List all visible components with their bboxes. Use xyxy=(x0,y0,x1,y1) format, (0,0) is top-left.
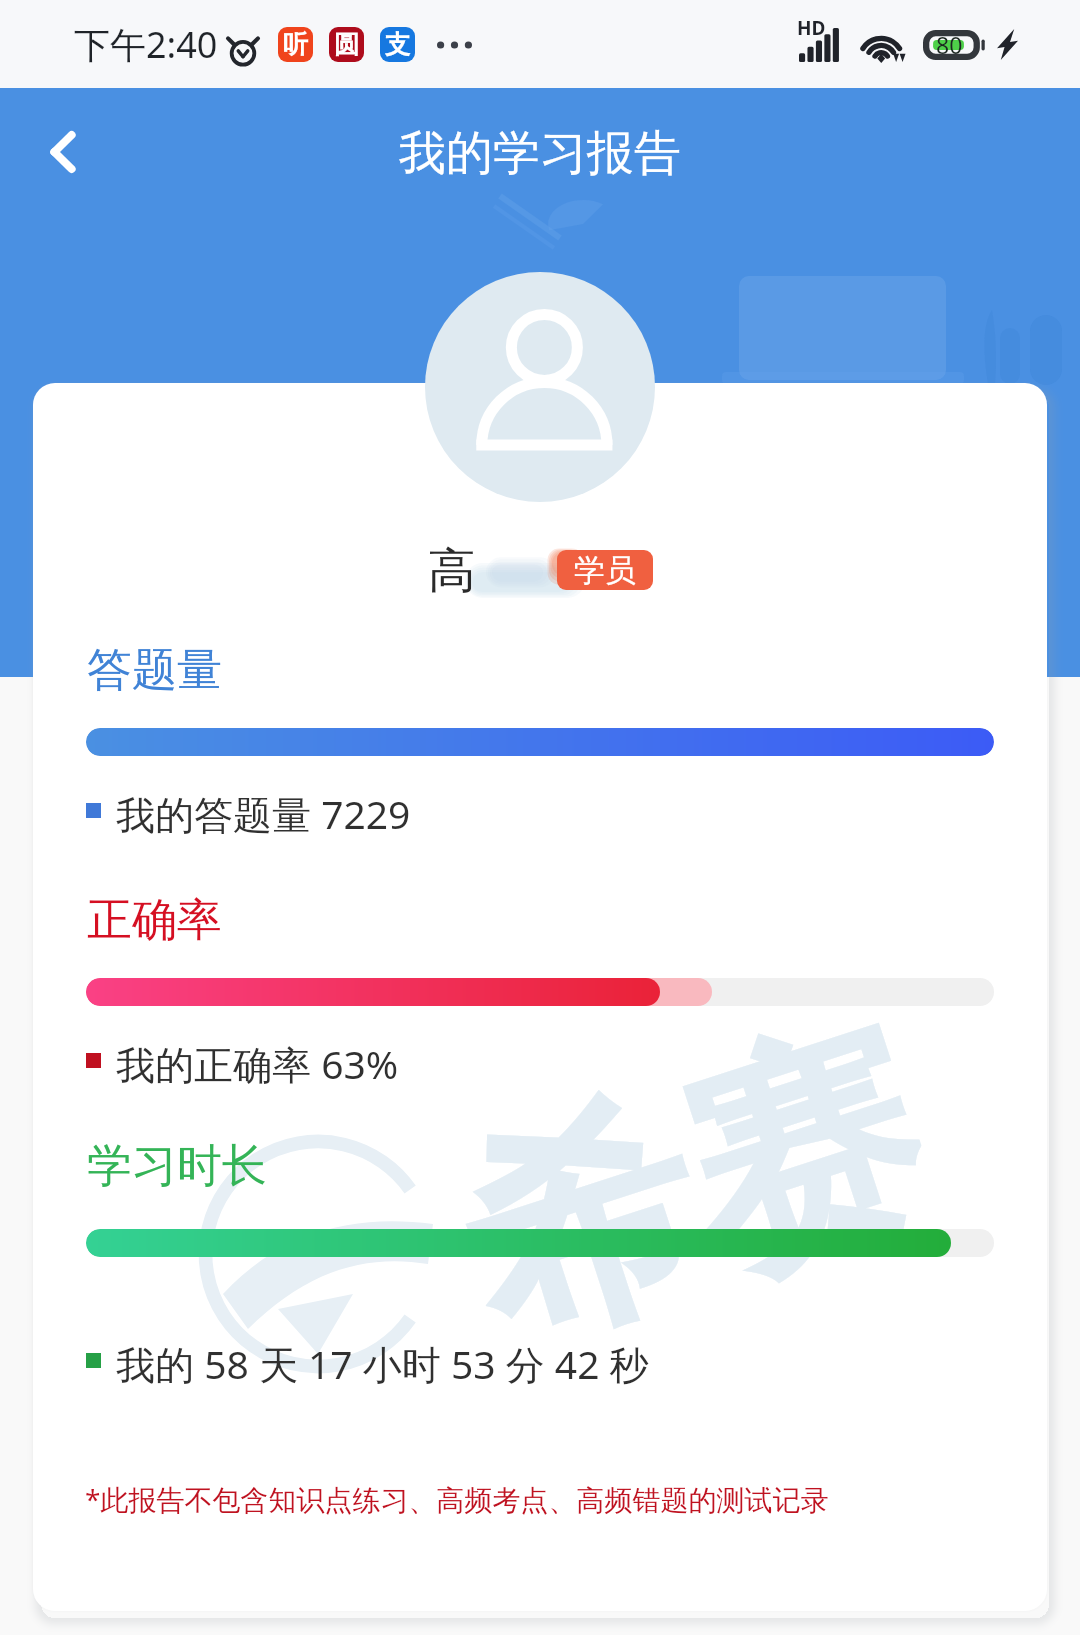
staticText: 学习时长 xyxy=(87,1138,267,1195)
staticText: 我的正确率 63% xyxy=(116,1037,399,1090)
staticText: 学员 xyxy=(574,551,636,590)
staticText: 正确率 xyxy=(87,892,222,949)
staticText: 答题量 xyxy=(87,642,222,699)
staticText: 高 xyxy=(428,541,476,601)
staticText: 下午2:40 xyxy=(74,20,218,69)
button[interactable]: Back xyxy=(1,90,125,214)
staticText: 我的答题量 7229 xyxy=(116,787,411,840)
staticText: 希赛 xyxy=(426,980,957,1400)
staticText: *此报告不包含知识点练习、高频考点、高频错题的测试记录 xyxy=(85,1480,829,1518)
staticText: 我的学习报告 xyxy=(399,124,681,183)
staticText: 支 xyxy=(385,29,410,60)
staticText: 80 xyxy=(936,29,963,59)
staticText: HD xyxy=(797,15,826,41)
staticText: 听 xyxy=(283,29,308,60)
button[interactable]: Profile photo xyxy=(425,272,655,502)
button[interactable]: 学员 xyxy=(557,550,653,590)
staticText: 圆 xyxy=(334,29,359,60)
staticText: 我的 58 天 17 小时 53 分 42 秒 xyxy=(116,1337,649,1390)
